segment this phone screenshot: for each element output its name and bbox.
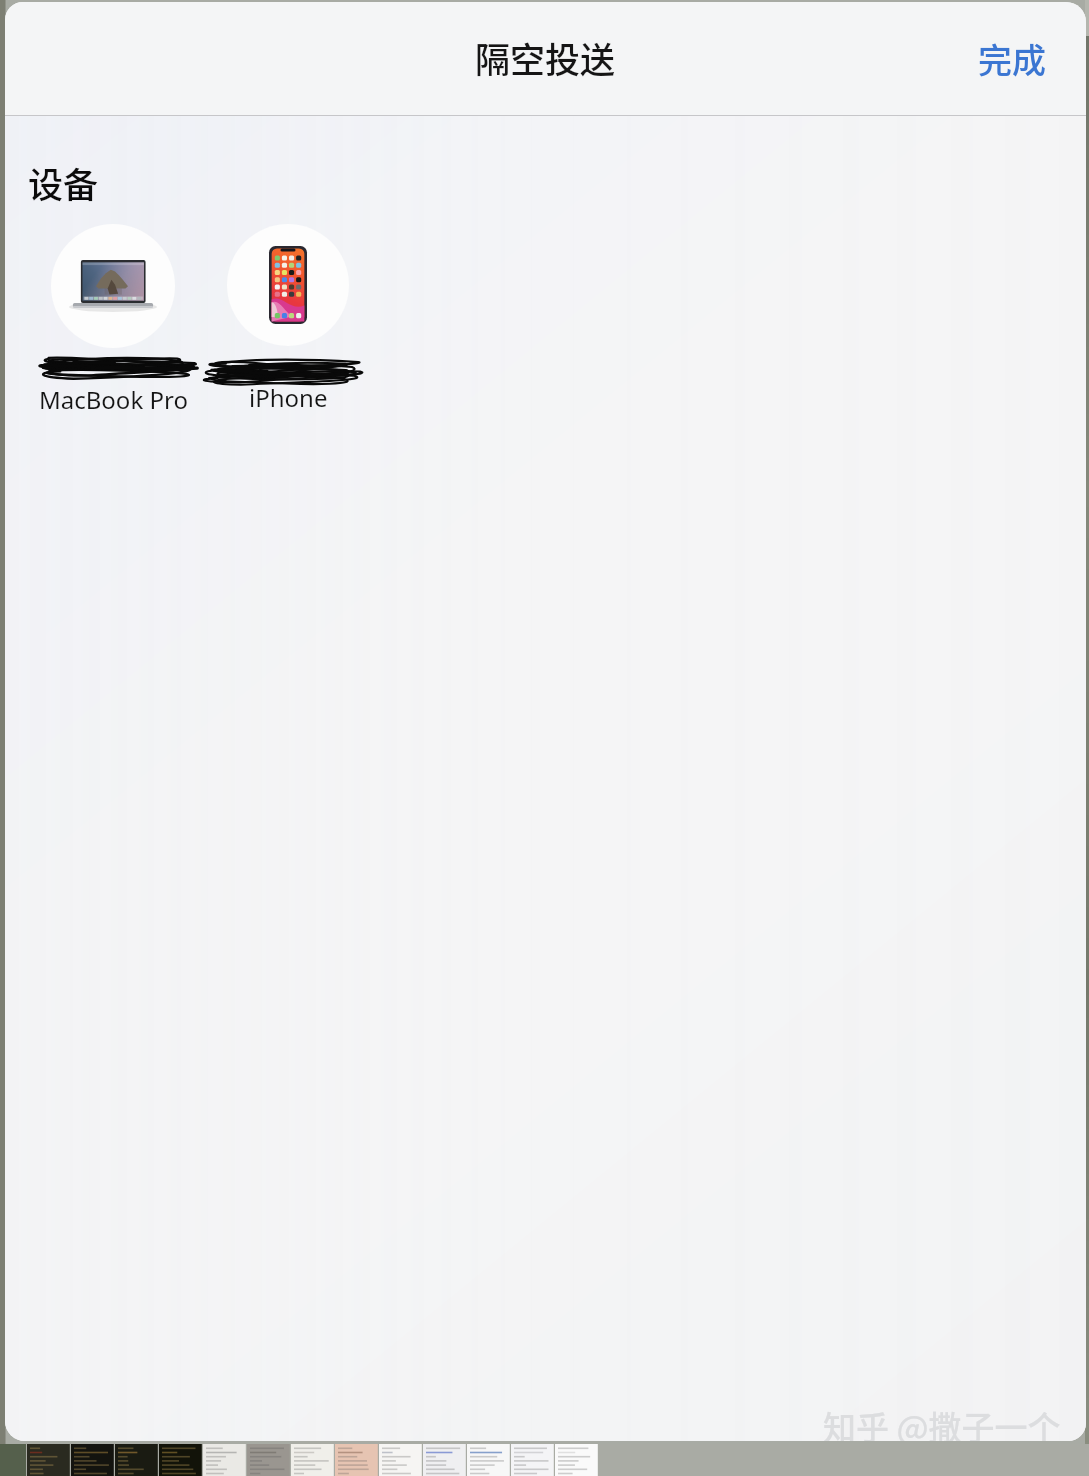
button[interactable]: MacBook Pro xyxy=(33,224,193,416)
staticText: MacBook Pro xyxy=(39,383,188,416)
button[interactable]: iPhone xyxy=(208,224,368,414)
staticText: 完成 xyxy=(978,34,1046,83)
button[interactable]: 完成 xyxy=(952,2,1086,115)
staticText: 隔空投送 xyxy=(475,32,616,83)
staticText: 设备 xyxy=(28,157,99,208)
staticText: iPhone xyxy=(249,381,328,414)
staticText: 知乎 @撒子一个 xyxy=(823,1402,1061,1441)
